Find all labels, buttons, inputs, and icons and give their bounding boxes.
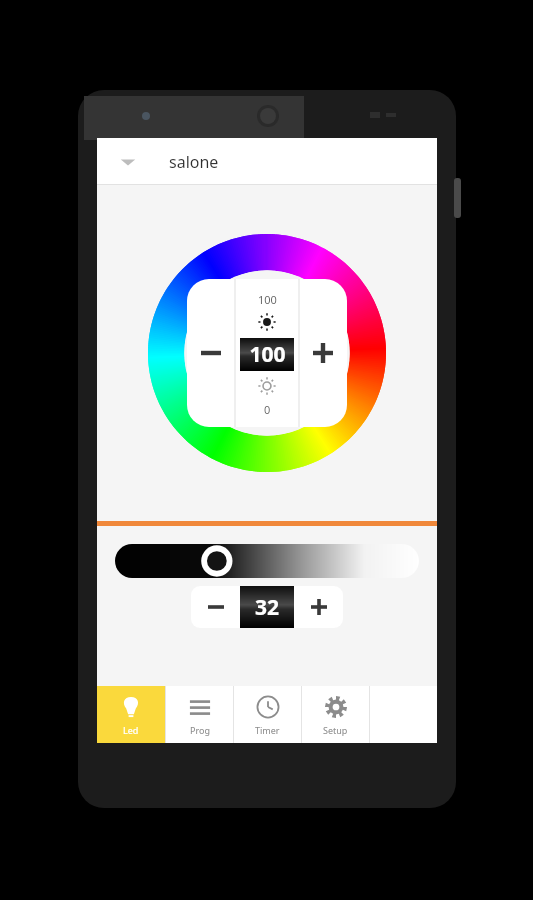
staticText: 100 xyxy=(258,292,277,307)
staticText: Timer xyxy=(255,724,280,736)
staticText: Led xyxy=(123,724,139,736)
button[interactable]: Colour wheel xyxy=(148,234,386,472)
button[interactable]: Brightness slider xyxy=(115,544,419,578)
staticText: 0 xyxy=(264,402,271,417)
button[interactable]: Decrease colour xyxy=(187,279,235,427)
button[interactable]: Increase colour xyxy=(299,279,347,427)
other: Select room xyxy=(119,153,137,171)
button[interactable]: Led xyxy=(97,686,165,743)
button[interactable]: Prog xyxy=(166,686,233,743)
button[interactable]: Increase brightness xyxy=(294,586,343,628)
button[interactable]: Timer xyxy=(234,686,301,743)
button[interactable]: Setup xyxy=(302,686,369,743)
staticText: Setup xyxy=(323,724,348,736)
staticText: 32 xyxy=(255,593,280,622)
button[interactable]: Select room xyxy=(97,138,437,185)
staticText: Prog xyxy=(190,724,210,736)
staticText: 100 xyxy=(249,340,286,369)
button[interactable]: Decrease brightness xyxy=(191,586,240,628)
staticText: salone xyxy=(169,151,219,173)
